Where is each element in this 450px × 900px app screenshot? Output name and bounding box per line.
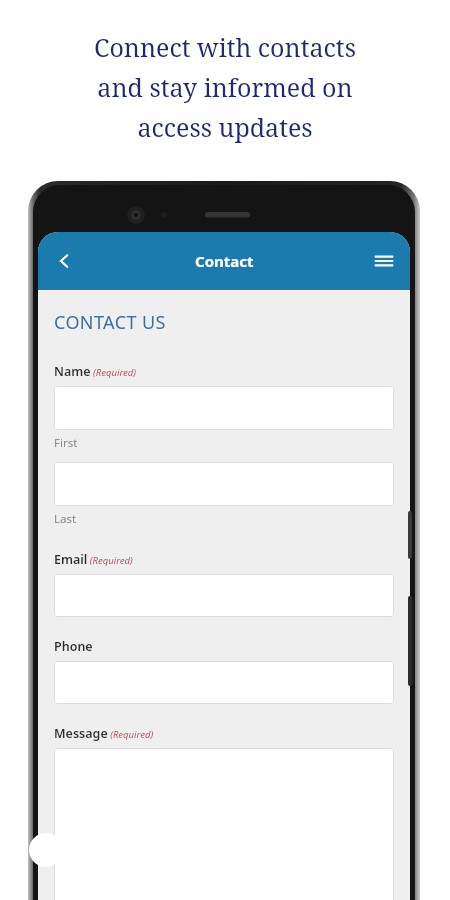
- staticText: Name (Required): [54, 363, 136, 380]
- button[interactable]: Back: [44, 241, 84, 281]
- button[interactable]: Menu: [364, 241, 404, 281]
- button[interactable]: Message input: [54, 748, 394, 900]
- staticText: Phone: [54, 638, 93, 655]
- staticText: Email (Required): [54, 551, 133, 568]
- staticText: Last: [54, 511, 77, 527]
- staticText: Connect with contacts: [94, 30, 356, 64]
- button[interactable]: Phone input: [54, 661, 394, 704]
- staticText: Contact: [195, 251, 254, 271]
- staticText: access updates: [137, 110, 313, 144]
- staticText: Message (Required): [54, 725, 154, 742]
- button[interactable]: Name last input: [54, 462, 394, 506]
- staticText: CONTACT US: [54, 310, 166, 335]
- button[interactable]: Email input: [54, 574, 394, 617]
- staticText: and stay informed on: [97, 70, 353, 104]
- button[interactable]: Chat: [29, 833, 63, 867]
- staticText: First: [54, 435, 78, 451]
- button[interactable]: Name first input: [54, 386, 394, 430]
